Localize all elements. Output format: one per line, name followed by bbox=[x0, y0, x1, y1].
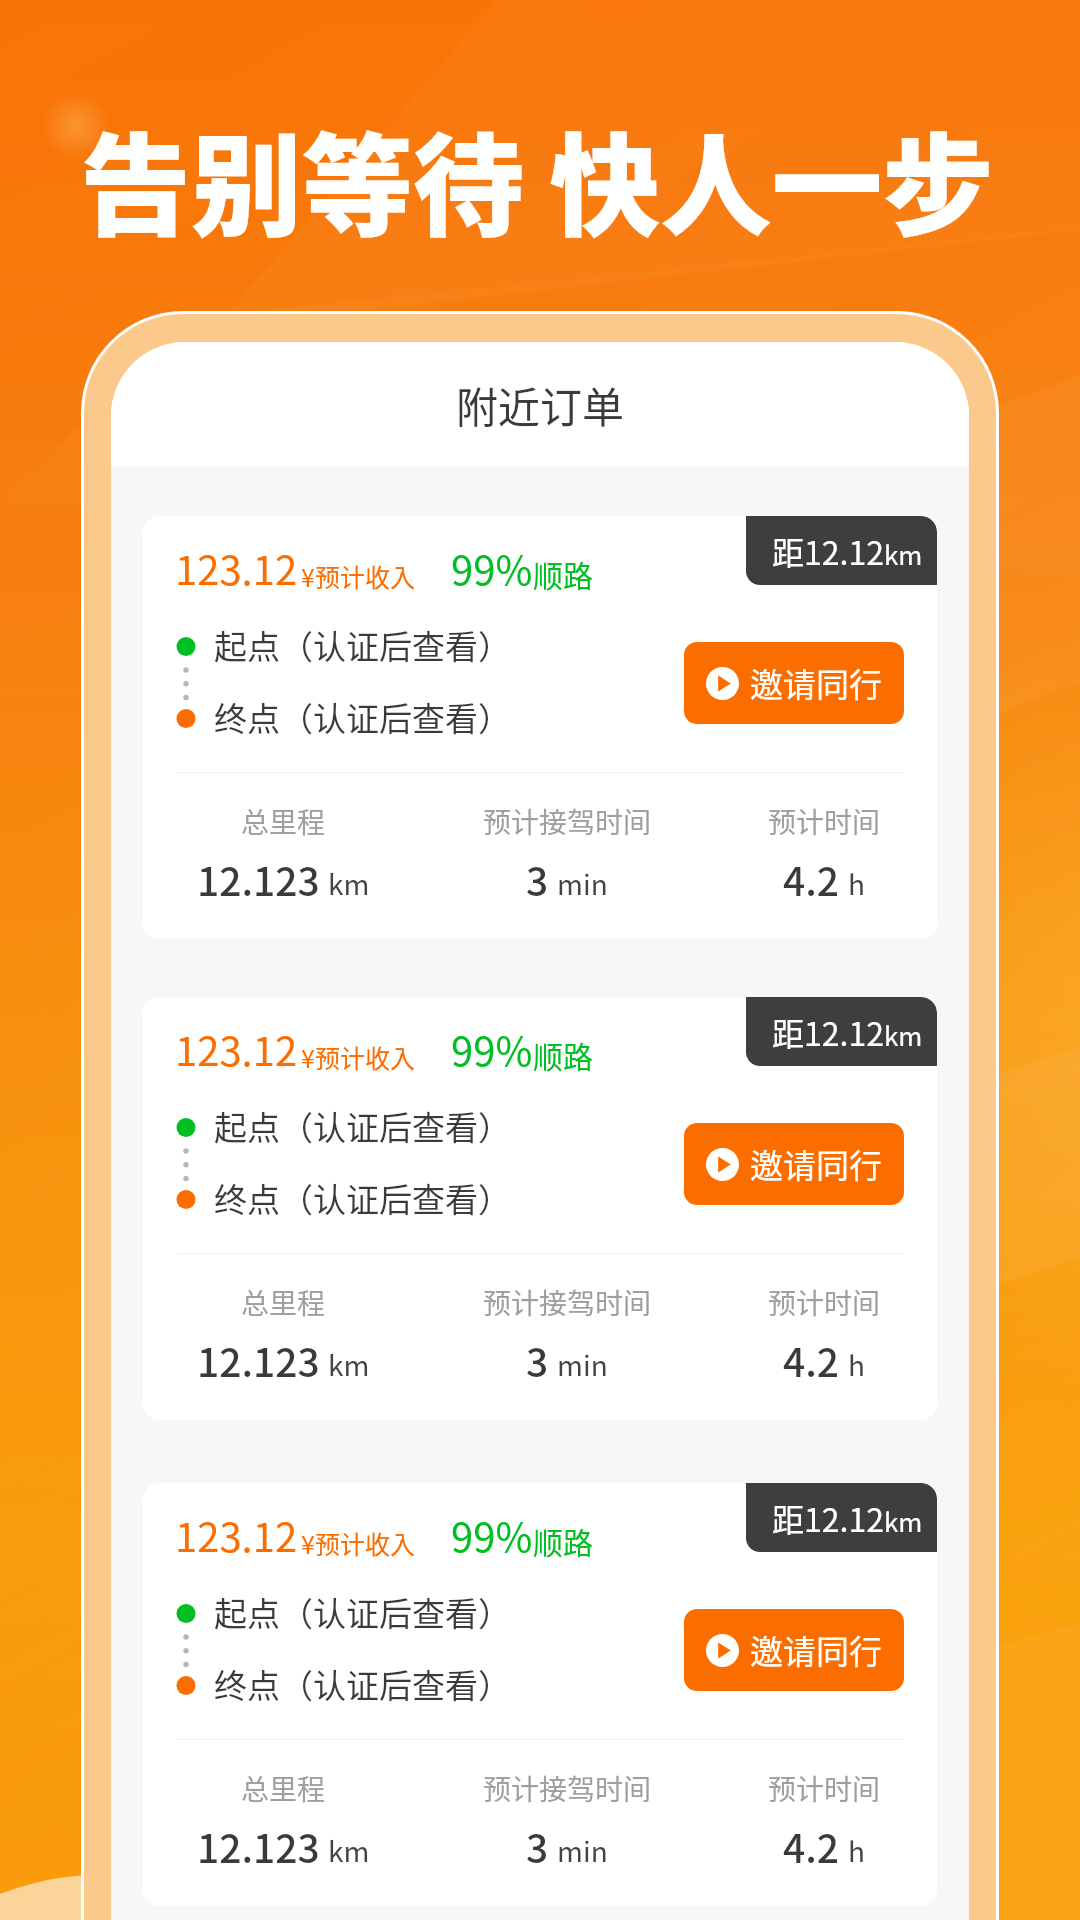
staticText: 3 bbox=[526, 1818, 549, 1874]
other: Play bbox=[706, 667, 739, 700]
button[interactable]: 距12.12 bbox=[143, 997, 937, 1420]
staticText: km bbox=[884, 535, 923, 573]
staticText: 附近订单 bbox=[456, 374, 625, 435]
staticText: 邀请同行 bbox=[750, 1140, 882, 1188]
staticText: km bbox=[328, 1344, 370, 1385]
staticText: 终点（认证后查看） bbox=[214, 1660, 511, 1708]
staticText: 预计接驾时间 bbox=[483, 801, 652, 842]
staticText: 99% bbox=[451, 539, 533, 597]
staticText: 距12.12 bbox=[772, 1009, 884, 1055]
staticText: h bbox=[848, 1830, 865, 1871]
staticText: 邀请同行 bbox=[750, 1626, 882, 1674]
button[interactable]: Play bbox=[684, 642, 904, 724]
staticText: ¥预计收入 bbox=[301, 1525, 415, 1561]
staticText: 12.123 bbox=[197, 1332, 320, 1388]
staticText: min bbox=[557, 863, 608, 904]
staticText: 距12.12 bbox=[772, 528, 884, 574]
staticText: 4.2 bbox=[783, 1332, 840, 1388]
staticText: 顺路 bbox=[533, 1519, 593, 1562]
staticText: ¥预计收入 bbox=[301, 1039, 415, 1075]
staticText: 邀请同行 bbox=[750, 659, 882, 707]
staticText: 3 bbox=[526, 1332, 549, 1388]
staticText: 4.2 bbox=[783, 851, 840, 907]
staticText: 起点（认证后查看） bbox=[214, 1102, 511, 1150]
staticText: km bbox=[884, 1502, 923, 1540]
staticText: 距12.12 bbox=[772, 1495, 884, 1541]
button[interactable]: Play bbox=[684, 1123, 904, 1205]
staticText: 123.12 bbox=[175, 1506, 298, 1564]
staticText: h bbox=[848, 1344, 865, 1385]
staticText: 顺路 bbox=[533, 552, 593, 595]
staticText: 预计时间 bbox=[768, 1768, 881, 1809]
button[interactable]: 距12.12 bbox=[143, 1483, 937, 1906]
staticText: 预计接驾时间 bbox=[483, 1768, 652, 1809]
staticText: 3 bbox=[526, 851, 549, 907]
other: Play bbox=[706, 1634, 739, 1667]
staticText: 99% bbox=[451, 1020, 533, 1078]
staticText: min bbox=[557, 1830, 608, 1871]
staticText: km bbox=[884, 1016, 923, 1054]
staticText: 123.12 bbox=[175, 1020, 298, 1078]
staticText: h bbox=[848, 863, 865, 904]
staticText: 终点（认证后查看） bbox=[214, 693, 511, 741]
staticText: km bbox=[328, 863, 370, 904]
staticText: 起点（认证后查看） bbox=[214, 1588, 511, 1636]
staticText: ¥预计收入 bbox=[301, 558, 415, 594]
staticText: 预计接驾时间 bbox=[483, 1282, 652, 1323]
staticText: 预计时间 bbox=[768, 801, 881, 842]
staticText: 预计时间 bbox=[768, 1282, 881, 1323]
other: Play bbox=[706, 1148, 739, 1181]
staticText: 12.123 bbox=[197, 851, 320, 907]
staticText: 12.123 bbox=[197, 1818, 320, 1874]
staticText: min bbox=[557, 1344, 608, 1385]
staticText: km bbox=[328, 1830, 370, 1871]
staticText: 总里程 bbox=[241, 801, 326, 842]
staticText: 起点（认证后查看） bbox=[214, 621, 511, 669]
staticText: 告别等待 快人一步 bbox=[80, 98, 994, 259]
staticText: 4.2 bbox=[783, 1818, 840, 1874]
staticText: 总里程 bbox=[241, 1282, 326, 1323]
staticText: 123.12 bbox=[175, 539, 298, 597]
button[interactable]: Play bbox=[684, 1609, 904, 1691]
staticText: 99% bbox=[451, 1506, 533, 1564]
staticText: 总里程 bbox=[241, 1768, 326, 1809]
button[interactable]: 距12.12 bbox=[143, 516, 937, 939]
staticText: 终点（认证后查看） bbox=[214, 1174, 511, 1222]
staticText: 顺路 bbox=[533, 1033, 593, 1076]
